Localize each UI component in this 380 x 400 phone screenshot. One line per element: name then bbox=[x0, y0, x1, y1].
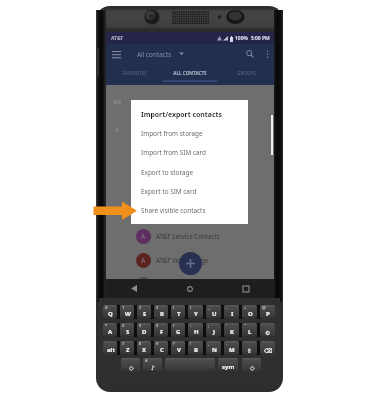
staticText: ALL CONTACTS bbox=[173, 70, 207, 76]
staticText: ◇ bbox=[129, 364, 134, 371]
button[interactable]: * bbox=[103, 323, 117, 337]
button[interactable]: : bbox=[188, 323, 203, 337]
staticText: ◇ bbox=[250, 364, 255, 371]
button[interactable]: alt bbox=[103, 341, 117, 355]
staticText: # bbox=[145, 358, 148, 363]
staticText: Z bbox=[126, 346, 130, 354]
button[interactable]: 4 bbox=[120, 323, 134, 337]
staticText: ' bbox=[226, 323, 227, 328]
button[interactable]: ⚙ bbox=[260, 323, 275, 337]
staticText: sym bbox=[222, 363, 235, 371]
staticText: 4 bbox=[122, 323, 125, 328]
button[interactable]: @ bbox=[260, 305, 275, 319]
button[interactable]: More options bbox=[260, 47, 274, 61]
staticText: U bbox=[212, 310, 217, 318]
staticText: A bbox=[115, 126, 119, 133]
button[interactable]: ALL CONTACTS bbox=[162, 64, 218, 85]
staticText: N bbox=[212, 346, 217, 354]
button[interactable]: 9 bbox=[154, 341, 168, 355]
button[interactable]: / bbox=[171, 323, 185, 337]
button[interactable]: - bbox=[224, 305, 239, 319]
staticText: T bbox=[177, 310, 181, 318]
button[interactable]: ' bbox=[224, 323, 239, 337]
staticText: L bbox=[248, 328, 252, 336]
button[interactable]: 8 bbox=[137, 341, 151, 355]
button[interactable]: 5 bbox=[137, 323, 151, 337]
button[interactable]: FAVORITES bbox=[106, 64, 162, 85]
button[interactable]: ⌫ bbox=[260, 341, 275, 355]
button[interactable]: ? bbox=[171, 341, 185, 355]
button[interactable] bbox=[106, 272, 274, 296]
button[interactable]: 3 bbox=[154, 305, 168, 319]
button[interactable]: " bbox=[242, 323, 257, 337]
staticText: . bbox=[226, 341, 228, 346]
button[interactable]: _ bbox=[206, 305, 221, 319]
button[interactable]: Search bbox=[240, 44, 260, 64]
button[interactable]: ) bbox=[188, 305, 203, 319]
button[interactable]: 2 bbox=[137, 305, 151, 319]
button[interactable]: ◇ bbox=[121, 358, 140, 372]
button[interactable]: All contacts bbox=[137, 50, 172, 59]
button[interactable]: Recent apps bbox=[218, 279, 274, 298]
staticText: ♪ bbox=[151, 364, 155, 371]
button[interactable]: ; bbox=[206, 323, 221, 337]
staticText: F bbox=[160, 328, 164, 336]
button[interactable]: # bbox=[103, 305, 117, 319]
staticText: H bbox=[194, 328, 199, 336]
staticText: E bbox=[143, 310, 147, 318]
button[interactable]: Export to SIM card bbox=[131, 182, 248, 201]
staticText: Import from SIM card bbox=[141, 148, 206, 157]
staticText: 7 bbox=[122, 341, 125, 346]
button[interactable]: Open navigation drawer bbox=[106, 44, 126, 64]
button[interactable]: Export to storage bbox=[131, 163, 248, 182]
button[interactable]: Share visible contacts bbox=[131, 201, 248, 220]
button[interactable]: Import from SIM card bbox=[131, 143, 248, 162]
staticText: AT&T bbox=[111, 35, 124, 42]
button[interactable]: , bbox=[206, 341, 221, 355]
staticText: / bbox=[173, 323, 175, 328]
button[interactable]: Home bbox=[162, 279, 218, 298]
button[interactable]: sym bbox=[218, 358, 238, 372]
button[interactable]: ( bbox=[171, 305, 185, 319]
button[interactable]: ! bbox=[188, 341, 203, 355]
staticText: Y bbox=[194, 310, 198, 318]
button[interactable]: A bbox=[106, 248, 274, 272]
staticText: C bbox=[160, 346, 164, 354]
button[interactable]: A bbox=[106, 224, 274, 248]
staticText: P bbox=[266, 310, 270, 318]
staticText: S bbox=[126, 328, 130, 336]
button[interactable]: ◇ bbox=[242, 358, 261, 372]
button[interactable]: Back bbox=[106, 279, 162, 298]
staticText: Q bbox=[108, 310, 113, 318]
staticText: * bbox=[105, 323, 108, 328]
button[interactable]: 6 bbox=[154, 323, 168, 337]
staticText: Import/export contacts bbox=[141, 110, 222, 119]
staticText: Export to SIM card bbox=[141, 187, 197, 196]
button[interactable]: # bbox=[143, 358, 162, 372]
button[interactable]: 7 bbox=[120, 341, 134, 355]
staticText: - bbox=[226, 305, 228, 310]
staticText: FAVORITES bbox=[122, 70, 147, 76]
staticText: B bbox=[194, 346, 198, 354]
staticText: ⚙ bbox=[265, 329, 271, 336]
button[interactable]: + bbox=[242, 305, 257, 319]
staticText: , bbox=[208, 341, 210, 346]
staticText: D bbox=[142, 328, 147, 336]
staticText: O bbox=[248, 310, 253, 318]
staticText: ME bbox=[113, 98, 122, 105]
button[interactable]: ⇧ bbox=[242, 341, 257, 355]
staticText: ; bbox=[208, 323, 210, 328]
staticText: @ bbox=[262, 305, 266, 310]
button[interactable]: . bbox=[224, 341, 239, 355]
staticText: J bbox=[213, 328, 215, 336]
staticText: A bbox=[141, 232, 146, 241]
button[interactable]: GROUPS bbox=[218, 64, 274, 85]
button[interactable]: Add contact bbox=[179, 252, 202, 275]
button[interactable]: Import from storage bbox=[131, 124, 248, 143]
staticText: 100% 5:00 PM bbox=[235, 35, 270, 42]
staticText: ) bbox=[190, 305, 192, 310]
staticText: # bbox=[105, 305, 108, 310]
button[interactable]: 1 bbox=[120, 305, 134, 319]
staticText: 2 bbox=[139, 305, 142, 310]
button[interactable] bbox=[165, 358, 215, 372]
